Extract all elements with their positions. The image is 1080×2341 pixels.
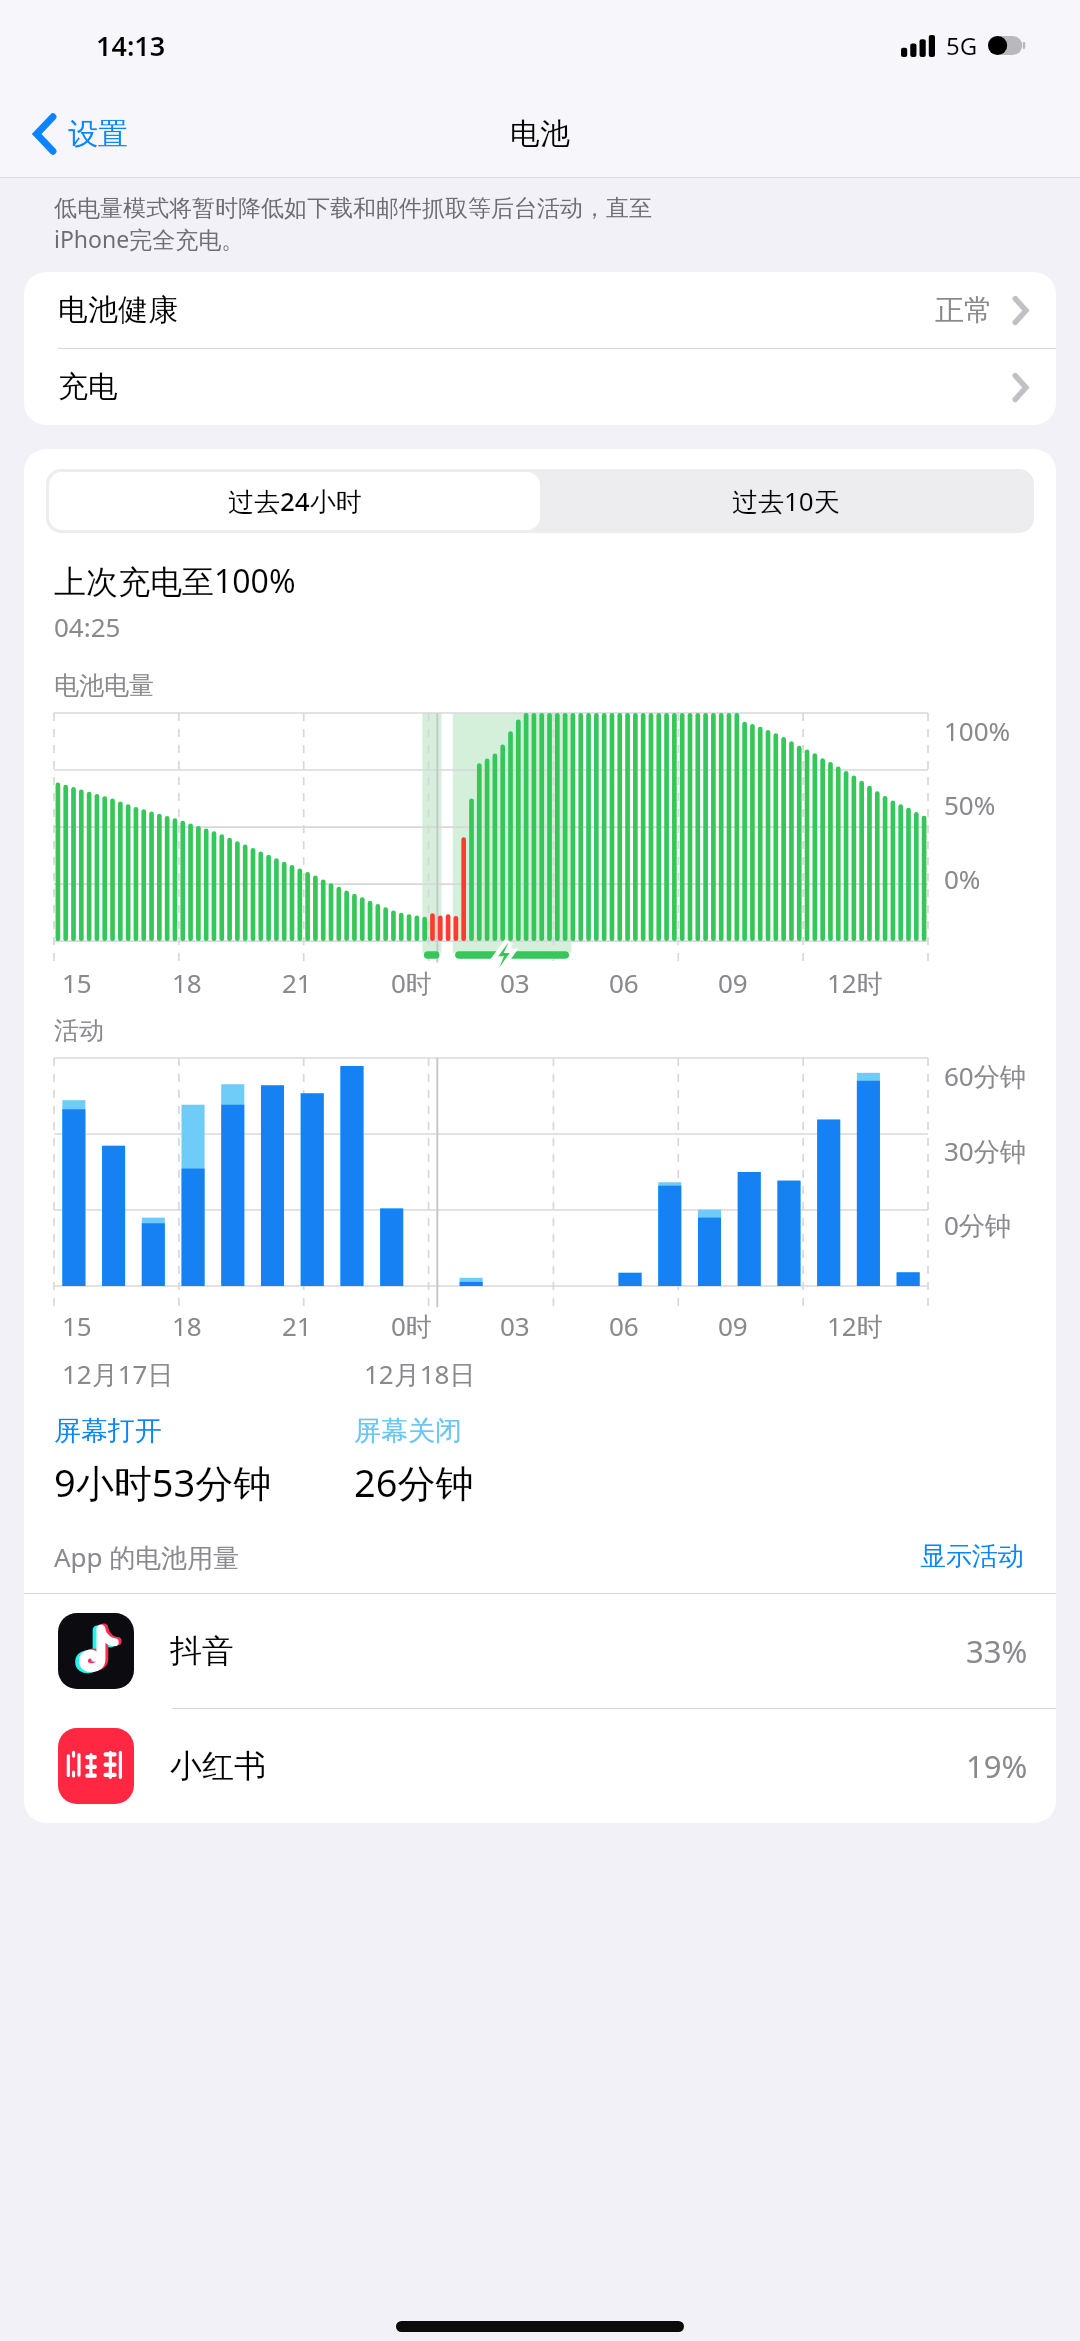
staticText: 过去24小时 <box>228 483 362 519</box>
staticText: 12时 <box>827 1308 883 1344</box>
staticText: 15 <box>62 1308 92 1343</box>
staticText: 21 <box>282 965 312 1000</box>
staticText: 30分钟 <box>944 1133 1026 1169</box>
staticText: 03 <box>500 1308 530 1343</box>
staticText: 小红书 <box>170 1746 266 1786</box>
staticText: 12月17日 <box>62 1356 174 1392</box>
staticText: 显示活动 <box>920 1540 1024 1573</box>
staticText: 低电量模式将暂时降低如下载和邮件抓取等后台活动，直至 <box>54 194 652 223</box>
staticText: 屏幕打开 <box>54 1414 162 1448</box>
staticText: 12时 <box>827 965 883 1001</box>
staticText: 100% <box>944 713 1011 748</box>
staticText: 过去10天 <box>732 483 840 519</box>
staticText: 电池 <box>510 115 570 153</box>
button[interactable]: 抖音 <box>24 1594 1056 1708</box>
staticText: 抖音 <box>170 1631 234 1671</box>
staticText: 09 <box>718 1308 748 1343</box>
button[interactable]: 过去10天 <box>540 472 1031 530</box>
staticText: 14:13 <box>96 27 166 64</box>
staticText: iPhone完全充电。 <box>54 223 245 254</box>
button[interactable]: 过去24小时 <box>49 472 540 530</box>
button[interactable]: 充电 <box>24 349 1056 425</box>
staticText: 15 <box>62 965 92 1000</box>
staticText: 正常 <box>935 292 993 329</box>
staticText: 06 <box>609 965 639 1000</box>
staticText: 0时 <box>391 965 432 1001</box>
staticText: 活动 <box>54 1015 104 1046</box>
other: 小红书 <box>58 1728 134 1804</box>
staticText: 9小时53分钟 <box>54 1456 272 1508</box>
staticText: 0分钟 <box>944 1207 1011 1243</box>
staticText: 60分钟 <box>944 1058 1026 1094</box>
button[interactable]: 电池健康 <box>24 272 1056 348</box>
staticText: 18 <box>172 965 202 1000</box>
staticText: 0% <box>944 861 981 896</box>
staticText: 06 <box>609 1308 639 1343</box>
staticText: App 的电池用量 <box>54 1539 240 1575</box>
staticText: 0时 <box>391 1308 432 1344</box>
staticText: 12月18日 <box>364 1356 476 1392</box>
button[interactable]: 小红书 <box>24 1709 1056 1823</box>
staticText: 26分钟 <box>354 1456 474 1508</box>
staticText: 充电 <box>58 368 118 406</box>
staticText: 上次充电至100% <box>54 559 296 603</box>
button[interactable]: 设置 <box>26 104 136 164</box>
staticText: 电池电量 <box>54 670 154 701</box>
staticText: 21 <box>282 1308 312 1343</box>
staticText: 电池健康 <box>58 291 178 329</box>
staticText: 屏幕关闭 <box>354 1414 462 1448</box>
staticText: 19% <box>966 1745 1028 1787</box>
staticText: 设置 <box>68 115 128 153</box>
button[interactable]: 显示活动 <box>916 1536 1028 1577</box>
staticText: 33% <box>966 1630 1028 1672</box>
staticText: 03 <box>500 965 530 1000</box>
staticText: 50% <box>944 787 996 822</box>
staticText: 09 <box>718 965 748 1000</box>
staticText: 5G <box>946 29 978 62</box>
staticText: 04:25 <box>54 609 121 644</box>
other: 抖音 <box>58 1613 134 1689</box>
staticText: 18 <box>172 1308 202 1343</box>
